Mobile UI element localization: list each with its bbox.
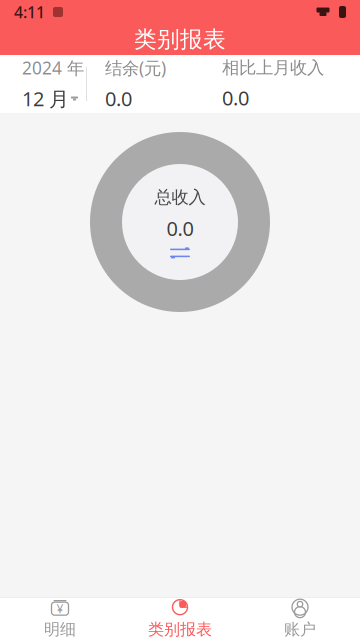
button[interactable]: 切换收入支出 xyxy=(122,164,238,280)
staticText: 总收入 xyxy=(154,187,205,208)
button[interactable]: 2024 年 xyxy=(0,46,84,122)
button[interactable]: 账户 xyxy=(240,593,360,640)
staticText: 12 月 xyxy=(22,85,69,112)
staticText: 0.0 xyxy=(105,85,132,112)
staticText: 账户 xyxy=(284,620,316,639)
staticText: ¥ xyxy=(56,601,63,617)
button[interactable]: 类别报表 xyxy=(120,593,240,640)
staticText: 2024 年 xyxy=(22,56,84,79)
staticText: 0.0 xyxy=(166,215,193,241)
staticText: 结余(元) xyxy=(105,56,166,79)
staticText: 类别报表 xyxy=(148,620,212,639)
button[interactable]: ¥ xyxy=(0,593,120,640)
staticText: 类别报表 xyxy=(134,26,226,53)
staticText: 相比上月收入 xyxy=(222,57,324,78)
staticText: 明细 xyxy=(44,620,76,639)
staticText: 0.0 xyxy=(222,84,249,111)
staticText: 4:11 xyxy=(14,1,45,23)
